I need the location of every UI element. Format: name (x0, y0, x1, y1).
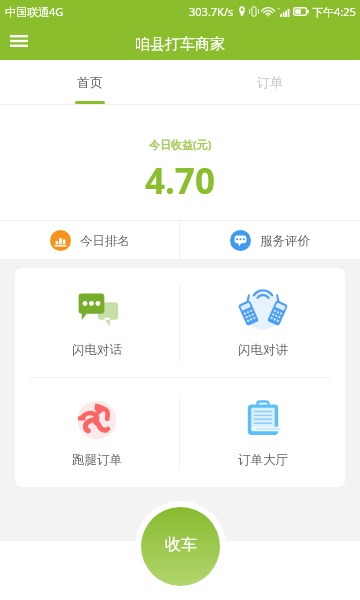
staticText: 今日收益(元) (149, 137, 212, 152)
staticText: 4.70 (145, 157, 215, 205)
staticText: 服务评价 (260, 233, 310, 249)
staticText: 订单大厅 (238, 452, 288, 468)
staticText: 闪电对讲 (238, 342, 288, 358)
button[interactable]: 服务评价 (180, 221, 360, 259)
button[interactable]: 收车 (141, 507, 220, 586)
staticText: 咱县打车商家 (135, 35, 225, 54)
button[interactable]: 订单大厅 (180, 378, 345, 487)
staticText: 收车 (165, 535, 197, 555)
staticText: 下午4:25 (312, 4, 356, 19)
button[interactable]: 闪电对讲 (180, 268, 345, 377)
button[interactable]: 闪电对话 (15, 268, 179, 377)
staticText: 跑腿订单 (72, 452, 122, 468)
staticText: 首页 (77, 74, 103, 90)
button[interactable]: Menu (0, 22, 38, 60)
staticText: 闪电对话 (72, 342, 122, 358)
staticText: 中国联通4G (5, 4, 64, 19)
button[interactable]: 首页 (0, 60, 180, 105)
button[interactable]: 跑腿订单 (15, 378, 179, 487)
button[interactable]: 今日排名 (0, 221, 179, 259)
staticText: 303.7K/s (189, 4, 234, 19)
button[interactable]: 订单 (180, 60, 360, 105)
staticText: 订单 (257, 74, 283, 90)
staticText: 今日排名 (80, 233, 130, 249)
